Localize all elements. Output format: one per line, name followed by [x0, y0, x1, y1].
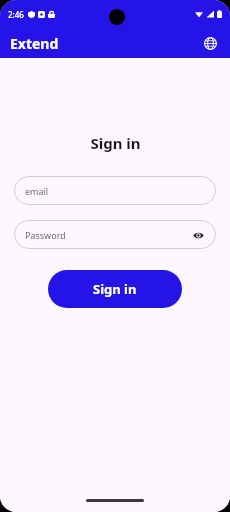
staticText: Extend: [10, 34, 59, 53]
staticText: Sign in: [90, 133, 141, 153]
button[interactable]: Sign in: [48, 270, 182, 308]
button[interactable]: email: [14, 176, 216, 205]
staticText: 2:46: [8, 9, 24, 20]
button[interactable]: Password: [14, 220, 216, 249]
button[interactable]: Change language: [198, 31, 222, 55]
staticText: Password: [25, 229, 66, 241]
staticText: email: [25, 185, 49, 197]
button[interactable]: Show password: [189, 226, 207, 244]
staticText: Sign in: [93, 280, 137, 298]
